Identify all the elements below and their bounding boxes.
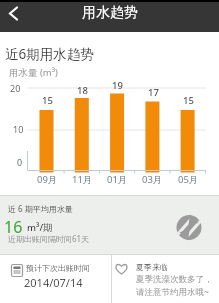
staticText: 09月	[37, 173, 58, 186]
staticText: 近期出账间隔时间61天	[8, 233, 90, 244]
staticText: 18	[77, 84, 88, 97]
staticText: 17	[148, 86, 159, 99]
staticText: 请注意节约用水哦~	[136, 286, 209, 298]
staticText: 夏季洗澡次数多了，	[136, 274, 213, 285]
button[interactable]: 近 6 期平均用水量	[0, 195, 219, 255]
staticText: 19	[112, 79, 123, 92]
staticText: 03月	[142, 173, 163, 186]
staticText: 15	[42, 94, 53, 107]
staticText: 用水量 (m³)	[9, 66, 58, 79]
staticText: 近6期用水趋势	[5, 45, 94, 63]
staticText: 2014/07/14	[24, 275, 83, 290]
staticText: 近 6 期平均用水量	[8, 203, 73, 214]
staticText: 11月	[72, 173, 93, 186]
staticText: m³/期	[27, 221, 53, 234]
staticText: 预计下次出账时间	[26, 263, 90, 273]
button[interactable]	[0, 0, 26, 26]
button[interactable]: 夏季来临	[112, 255, 219, 303]
staticText: 10	[13, 123, 24, 135]
staticText: 20	[10, 82, 21, 94]
staticText: 05月	[178, 173, 199, 186]
staticText: 用水趋势	[82, 4, 138, 22]
staticText: 01月	[107, 173, 128, 186]
staticText: 15	[183, 94, 194, 107]
button[interactable]: 预计下次出账时间	[0, 255, 111, 303]
staticText: 16	[4, 216, 23, 238]
staticText: 0	[17, 156, 23, 168]
staticText: 夏季来临	[136, 262, 168, 272]
